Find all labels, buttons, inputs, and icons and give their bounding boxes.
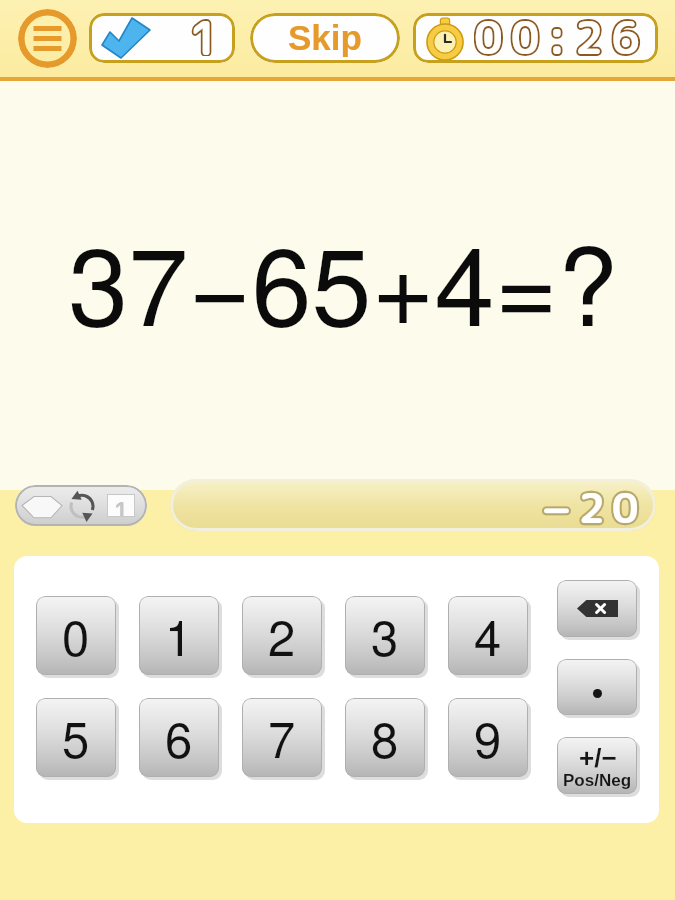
- button[interactable]: −20: [170, 479, 656, 531]
- staticText: 00:26: [474, 13, 649, 56]
- staticText: Pos/Neg: [563, 771, 632, 790]
- staticText: −20: [541, 479, 646, 530]
- button[interactable]: Switch answer mode: [15, 485, 147, 526]
- button[interactable]: 6: [139, 698, 219, 777]
- staticText: 5: [62, 702, 90, 772]
- button[interactable]: Backspace: [557, 580, 637, 637]
- button[interactable]: 1: [139, 596, 219, 675]
- staticText: 7: [268, 702, 296, 772]
- button[interactable]: 7: [242, 698, 322, 777]
- staticText: 0: [62, 600, 90, 670]
- staticText: −20: [541, 479, 646, 530]
- staticText: 1: [189, 13, 219, 56]
- button[interactable]: 2: [242, 596, 322, 675]
- button[interactable]: Menu: [18, 9, 77, 68]
- staticText: 1: [165, 600, 193, 670]
- button[interactable]: Decimal point: [557, 659, 637, 715]
- staticText: 6: [165, 702, 193, 772]
- staticText: 00:26: [474, 13, 649, 56]
- button[interactable]: Skip: [250, 13, 400, 63]
- button[interactable]: Toggle positive or negative: [557, 737, 637, 794]
- staticText: 4: [474, 600, 502, 670]
- staticText: 2: [268, 600, 296, 670]
- staticText: 1: [114, 494, 128, 517]
- staticText: 3: [371, 600, 399, 670]
- staticText: +/−: [579, 743, 617, 772]
- button[interactable]: 9: [448, 698, 528, 777]
- staticText: 37−65+4=?: [68, 202, 618, 357]
- button[interactable]: 3: [345, 596, 425, 675]
- button[interactable]: 0: [36, 596, 116, 675]
- staticText: 1: [189, 13, 219, 56]
- staticText: Skip: [288, 18, 362, 57]
- button[interactable]: 4: [448, 596, 528, 675]
- button[interactable]: 5: [36, 698, 116, 777]
- button[interactable]: 1: [89, 13, 235, 63]
- staticText: 8: [371, 702, 399, 772]
- button[interactable]: 8: [345, 698, 425, 777]
- staticText: 9: [474, 702, 502, 772]
- button[interactable]: 00:26: [413, 13, 658, 63]
